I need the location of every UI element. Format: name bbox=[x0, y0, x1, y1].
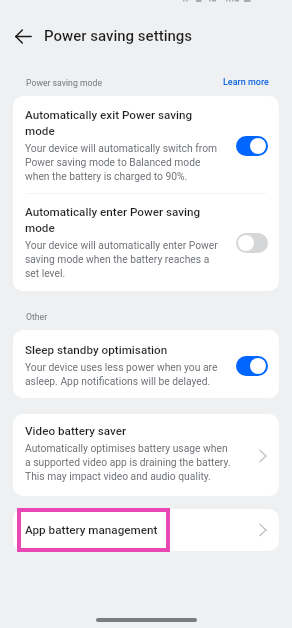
staticText: Automatically optimises battery usage wh… bbox=[25, 442, 231, 483]
staticText: Learn more bbox=[223, 77, 269, 88]
staticText: Your device uses less power when you are… bbox=[25, 361, 218, 388]
button[interactable]: Switch on bbox=[236, 356, 268, 376]
button[interactable]: Switch off bbox=[236, 233, 268, 253]
button[interactable]: Automatically enter Power saving mode bbox=[13, 194, 279, 291]
button[interactable]: Switch on bbox=[236, 136, 268, 156]
staticText: Automatically enter Power saving mode bbox=[25, 205, 201, 235]
staticText: Other bbox=[26, 312, 48, 322]
staticText: Power saving mode bbox=[26, 78, 102, 88]
staticText: Video battery saver bbox=[25, 424, 127, 438]
button[interactable]: Sleep standby optimisation bbox=[13, 330, 279, 398]
button[interactable]: Automatically exit Power saving mode bbox=[13, 96, 279, 193]
staticText: Your device will automatically enter Pow… bbox=[25, 239, 218, 280]
button[interactable]: Video battery saver bbox=[13, 414, 279, 496]
staticText: Sleep standby optimisation bbox=[25, 343, 168, 357]
button[interactable]: Learn more bbox=[223, 77, 269, 88]
staticText: Automatically exit Power saving mode bbox=[25, 108, 193, 138]
button[interactable]: Back bbox=[4, 17, 42, 55]
button[interactable]: App battery management bbox=[13, 509, 279, 551]
staticText: Your device will automatically switch fr… bbox=[25, 142, 218, 183]
staticText: App battery management bbox=[25, 523, 256, 537]
staticText: Power saving settings bbox=[44, 27, 193, 45]
